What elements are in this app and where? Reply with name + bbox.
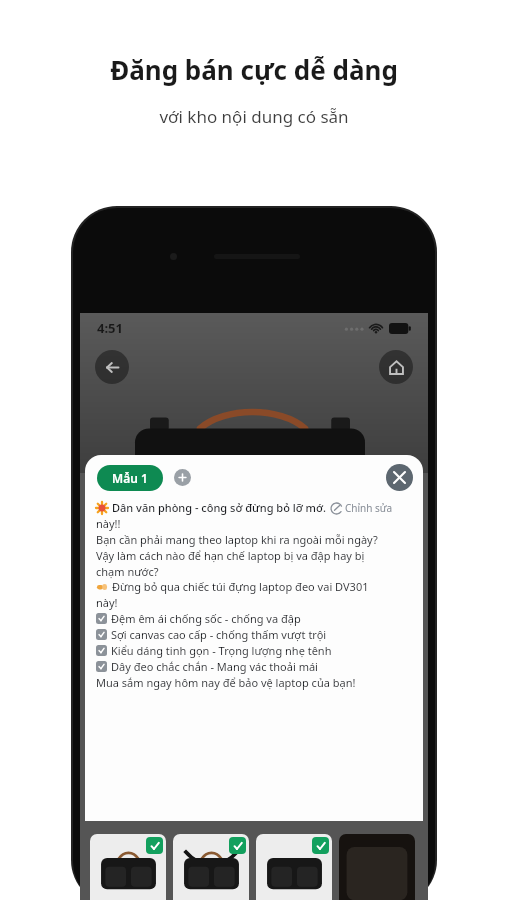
button[interactable]: Back — [95, 350, 129, 384]
staticText: này! — [96, 595, 118, 610]
staticText: Chỉnh sửa — [345, 501, 393, 515]
staticText: Sợi canvas cao cấp - chống thấm vượt trộ… — [111, 627, 327, 642]
staticText: Kiểu dáng tinh gọn - Trọng lượng nhẹ tên… — [111, 643, 332, 658]
button[interactable]: Chỉnh sửa — [331, 501, 393, 515]
staticText: Mua sắm ngay hôm nay để bảo vệ laptop củ… — [96, 675, 356, 690]
staticText: Bạn cần phải mang theo laptop khi ra ngo… — [96, 532, 378, 547]
button[interactable] — [256, 834, 332, 900]
button[interactable]: Add template — [174, 469, 191, 486]
staticText: với kho nội dung có sẵn — [159, 105, 349, 128]
staticText: này!! — [96, 516, 121, 531]
staticText: Đăng bán cực dễ dàng — [110, 52, 398, 87]
button[interactable]: Mẫu 1 — [97, 465, 163, 491]
staticText: Dân văn phòng - công sở đừng bỏ lỡ mớ. — [112, 500, 326, 515]
staticText: 4:51 — [97, 319, 123, 337]
button[interactable]: Close — [386, 464, 413, 491]
staticText: Đệm êm ái chống sốc - chống va đập — [111, 611, 301, 626]
staticText: Mẫu 1 — [112, 470, 148, 486]
staticText: Dây đeo chắc chắn - Mang vác thoải mái — [111, 659, 318, 674]
button[interactable]: Home — [379, 350, 413, 384]
button[interactable] — [90, 834, 166, 900]
staticText: chạm nước? — [96, 564, 159, 579]
button[interactable] — [339, 834, 415, 900]
button[interactable] — [173, 834, 249, 900]
staticText: Đừng bỏ qua chiếc túi đựng laptop đeo va… — [112, 579, 369, 594]
staticText: Vậy làm cách nào để hạn chế laptop bị va… — [96, 548, 365, 563]
